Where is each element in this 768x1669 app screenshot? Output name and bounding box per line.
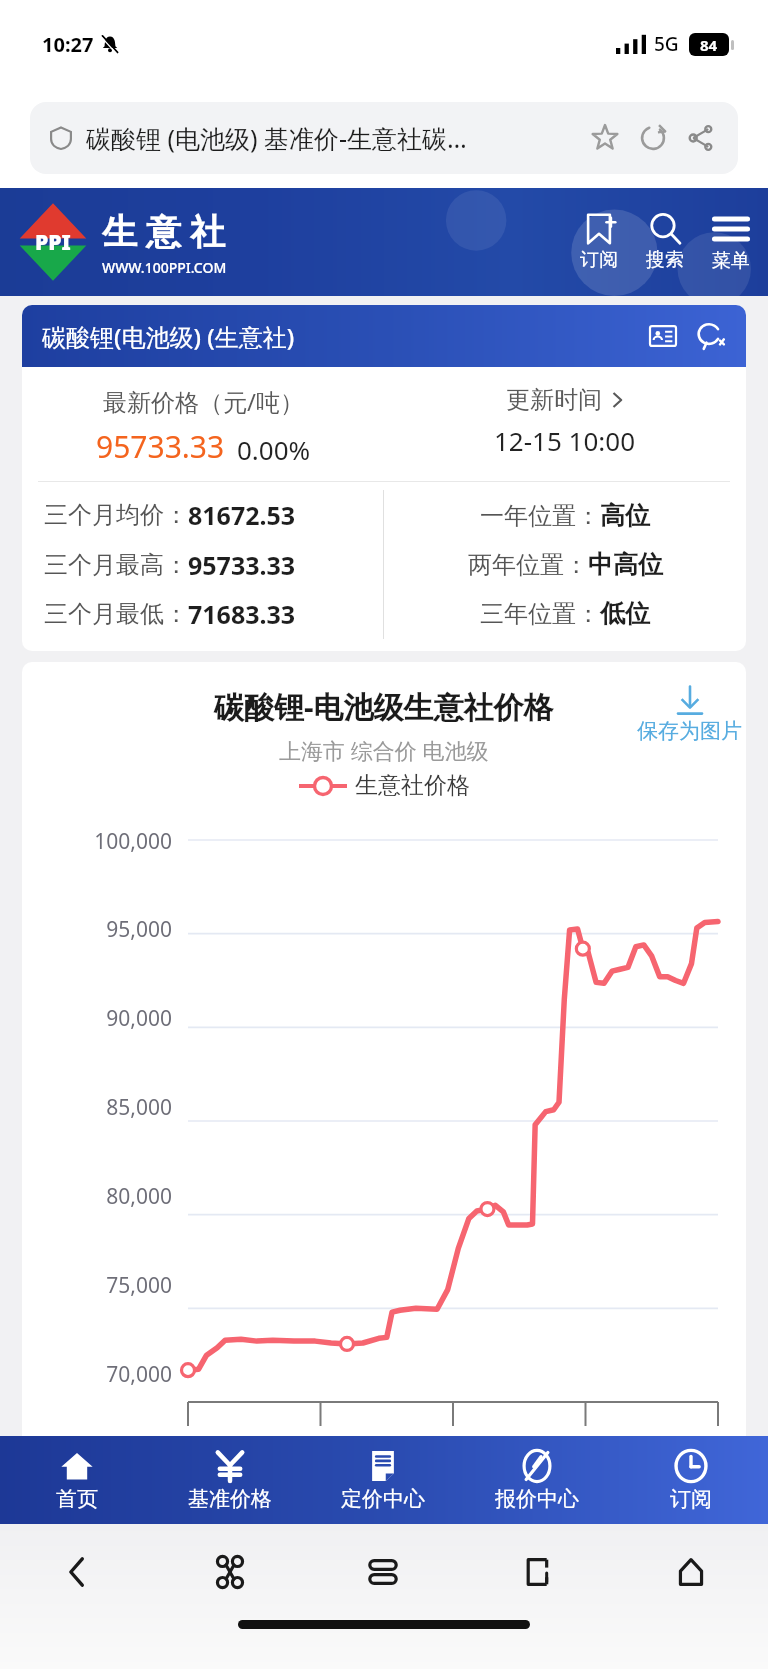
button[interactable]: Comments <box>696 321 726 351</box>
button[interactable]: Bookmark <box>588 121 622 155</box>
staticText: 最新价格（元/吨） <box>103 385 304 418</box>
staticText: 订阅 <box>580 248 618 272</box>
staticText: 定价中心 <box>341 1486 425 1512</box>
staticText: 80,000 <box>22 1182 172 1211</box>
staticText: 95,000 <box>22 915 172 944</box>
staticText: 报价中心 <box>495 1486 579 1512</box>
staticText: 三个月最低： <box>44 599 188 629</box>
staticText: 一年位置： <box>480 501 600 531</box>
staticText: 订阅 <box>670 1486 712 1512</box>
staticText: 高位 <box>600 500 650 531</box>
button[interactable]: 订阅 <box>578 212 620 272</box>
staticText: 75,000 <box>22 1271 172 1300</box>
button[interactable]: Split screen <box>306 1524 460 1620</box>
staticText: 两年位置： <box>468 550 588 580</box>
staticText: 三个月均价： <box>44 500 188 530</box>
staticText: 搜索 <box>646 248 684 272</box>
staticText: 三年位置： <box>480 599 600 629</box>
staticText: 95733.33 <box>96 426 225 467</box>
button[interactable]: Screenshot <box>153 1524 306 1620</box>
staticText: 84 <box>700 35 718 55</box>
staticText: 首页 <box>56 1486 98 1512</box>
button[interactable]: 碳酸锂 (电池级) 基准价-生意社碳… <box>30 102 738 174</box>
button[interactable]: Refresh <box>636 121 670 155</box>
staticText: 85,000 <box>22 1093 172 1122</box>
staticText: 0.00% <box>237 432 311 467</box>
staticText: 碳酸锂-电池级生意社价格 <box>214 686 554 727</box>
staticText: 低位 <box>600 598 650 629</box>
staticText: 生意社价格 <box>355 771 470 800</box>
staticText: 上海市 综合价 电池级 <box>279 735 489 765</box>
button[interactable]: 定价中心 <box>306 1436 460 1524</box>
button[interactable]: Home <box>614 1524 768 1620</box>
staticText: WWW.100PPI.COM <box>102 258 227 277</box>
button[interactable]: Back <box>0 1524 153 1620</box>
staticText: 碳酸锂(电池级) (生意社) <box>42 320 295 353</box>
staticText: 100,000 <box>22 827 172 856</box>
button[interactable]: Recents <box>460 1524 614 1620</box>
staticText: 10:27 <box>42 31 94 58</box>
button[interactable]: 保存为图片 <box>637 686 742 744</box>
staticText: 95733.33 <box>188 548 296 582</box>
staticText: 保存为图片 <box>637 718 742 744</box>
staticText: 基准价格 <box>188 1486 272 1512</box>
staticText: 70,000 <box>22 1360 172 1389</box>
staticText: 菜单 <box>712 249 750 273</box>
button[interactable]: 更新时间 <box>384 385 746 458</box>
staticText: 更新时间 <box>506 385 602 415</box>
staticText: 71683.33 <box>188 597 296 631</box>
button[interactable]: Contact card <box>648 321 678 351</box>
staticText: 90,000 <box>22 1004 172 1033</box>
staticText: 生 意 社 <box>102 207 226 255</box>
button[interactable]: 菜单 <box>710 211 752 273</box>
staticText: 81672.53 <box>188 498 296 532</box>
staticText: 碳酸锂 (电池级) 基准价-生意社碳… <box>86 121 467 155</box>
button[interactable]: 报价中心 <box>460 1436 614 1524</box>
button[interactable]: 首页 <box>0 1436 153 1524</box>
staticText: 中高位 <box>588 549 663 580</box>
staticText: 三个月最高： <box>44 550 188 580</box>
button[interactable]: 基准价格 <box>153 1436 306 1524</box>
button[interactable]: 搜索 <box>644 212 686 272</box>
button[interactable]: Share <box>684 121 718 155</box>
staticText: 12-15 10:00 <box>494 423 636 458</box>
staticText: PPI <box>35 228 71 257</box>
button[interactable]: 碳酸锂(电池级) (生意社) <box>22 305 746 367</box>
button[interactable]: 订阅 <box>614 1436 768 1524</box>
staticText: 5G <box>654 31 679 57</box>
